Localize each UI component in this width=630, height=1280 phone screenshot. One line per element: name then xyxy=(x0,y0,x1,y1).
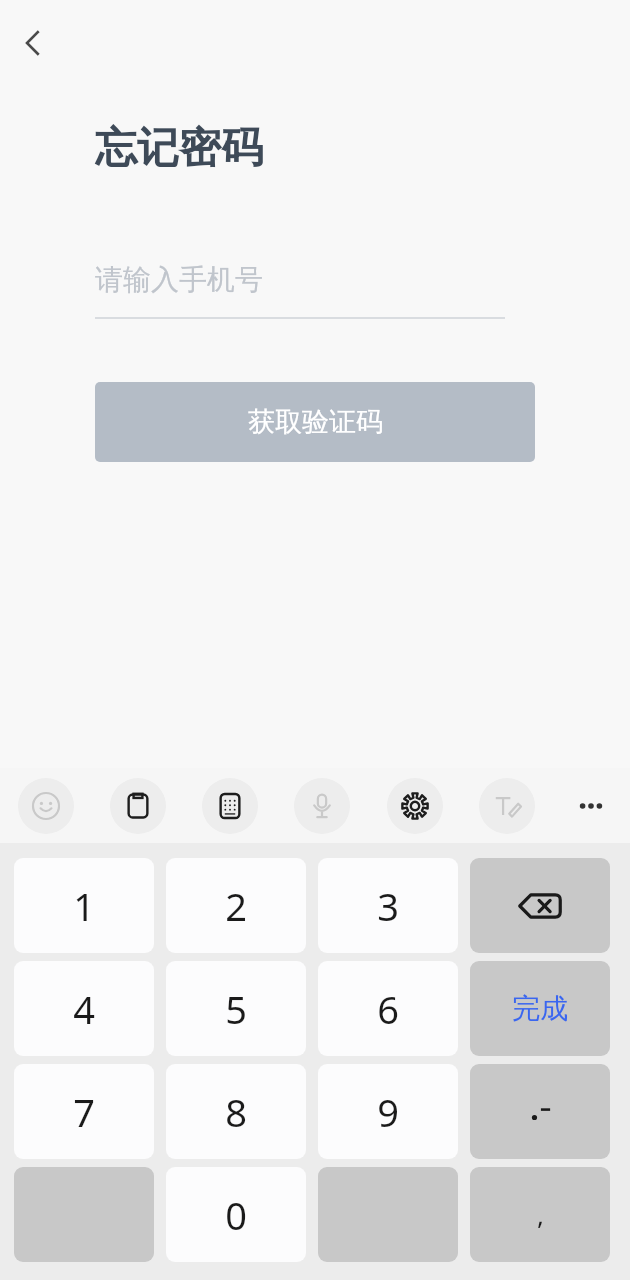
button[interactable]: 2 xyxy=(166,858,306,953)
staticText: 4 xyxy=(73,983,95,1035)
staticText: 8 xyxy=(225,1086,247,1138)
button[interactable]: 完成 xyxy=(470,961,610,1056)
button[interactable]: Handwriting xyxy=(479,778,535,834)
button[interactable]: 获取验证码 xyxy=(95,382,535,462)
button[interactable]: Emoji xyxy=(18,778,74,834)
staticText: 2 xyxy=(225,880,247,932)
button[interactable]: 5 xyxy=(166,961,306,1056)
staticText: 获取验证码 xyxy=(248,405,383,439)
staticText: 9 xyxy=(377,1086,399,1138)
staticText: 7 xyxy=(73,1086,95,1138)
staticText: 完成 xyxy=(512,991,568,1026)
button[interactable]: Clipboard xyxy=(110,778,166,834)
button[interactable]: 6 xyxy=(318,961,458,1056)
button[interactable]: 7 xyxy=(14,1064,154,1159)
button[interactable]: 0 xyxy=(166,1167,306,1262)
staticText: 忘记密码 xyxy=(95,122,263,175)
button[interactable]: More xyxy=(563,778,619,834)
button[interactable]: Settings xyxy=(387,778,443,834)
button[interactable]: Back xyxy=(4,14,62,72)
staticText: 1 xyxy=(73,880,95,932)
staticText: 6 xyxy=(377,983,399,1035)
staticText: 3 xyxy=(377,880,399,932)
staticText: 0 xyxy=(225,1189,247,1241)
button[interactable]: 9 xyxy=(318,1064,458,1159)
button[interactable]: Dot and dash xyxy=(470,1064,610,1159)
button[interactable]: 4 xyxy=(14,961,154,1056)
button[interactable]: Keyboard layout xyxy=(202,778,258,834)
button[interactable]: Voice input xyxy=(294,778,350,834)
staticText: 5 xyxy=(225,983,247,1035)
staticText: , xyxy=(537,1197,544,1232)
button[interactable]: 1 xyxy=(14,858,154,953)
button[interactable]: , xyxy=(470,1167,610,1262)
button[interactable]: Backspace xyxy=(470,858,610,953)
button[interactable]: 8 xyxy=(166,1064,306,1159)
staticText: 请输入手机号 xyxy=(95,262,263,297)
button[interactable]: 3 xyxy=(318,858,458,953)
button[interactable]: 请输入手机号 xyxy=(95,262,505,319)
